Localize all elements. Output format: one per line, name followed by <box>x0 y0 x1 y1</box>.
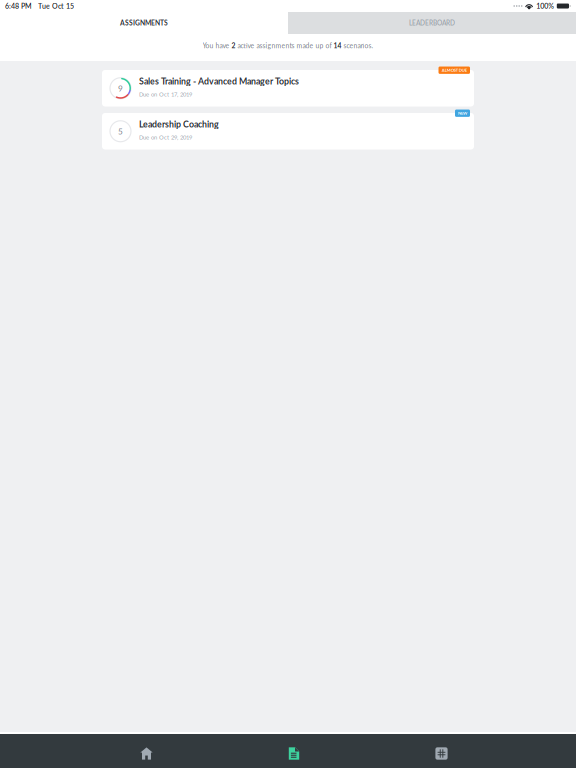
button[interactable]: Leaderboard <box>409 734 473 768</box>
button[interactable]: Assignments <box>262 734 326 768</box>
staticText: Due on Oct 17, 2019 <box>139 91 192 98</box>
staticText: You have <box>202 41 231 50</box>
staticText: 9 <box>118 83 123 93</box>
button[interactable]: LEADERBOARD <box>288 12 576 34</box>
button[interactable]: 9 <box>102 70 474 106</box>
staticText: Due on Oct 29, 2019 <box>139 134 192 141</box>
staticText: Sales Training - Advanced Manager Topics <box>139 76 299 86</box>
staticText: NEW <box>458 111 467 116</box>
staticText: LEADERBOARD <box>409 19 455 27</box>
staticText: Tue Oct 15 <box>38 2 74 10</box>
staticText: 6:48 PM <box>5 2 32 10</box>
staticText: 14 <box>333 41 341 50</box>
staticText: Leadership Coaching <box>139 119 219 129</box>
staticText: ASSIGNMENTS <box>120 19 168 27</box>
staticText: ALMOST DUE <box>442 68 467 73</box>
staticText: 2 <box>231 41 235 50</box>
staticText: 100% <box>536 2 554 10</box>
button[interactable]: 5 <box>102 113 474 149</box>
button[interactable]: ASSIGNMENTS <box>0 12 288 34</box>
button[interactable]: Home <box>114 734 178 768</box>
staticText: 5 <box>118 126 123 136</box>
staticText: scenarios. <box>341 41 373 50</box>
staticText: active assignments made up of <box>235 41 333 50</box>
